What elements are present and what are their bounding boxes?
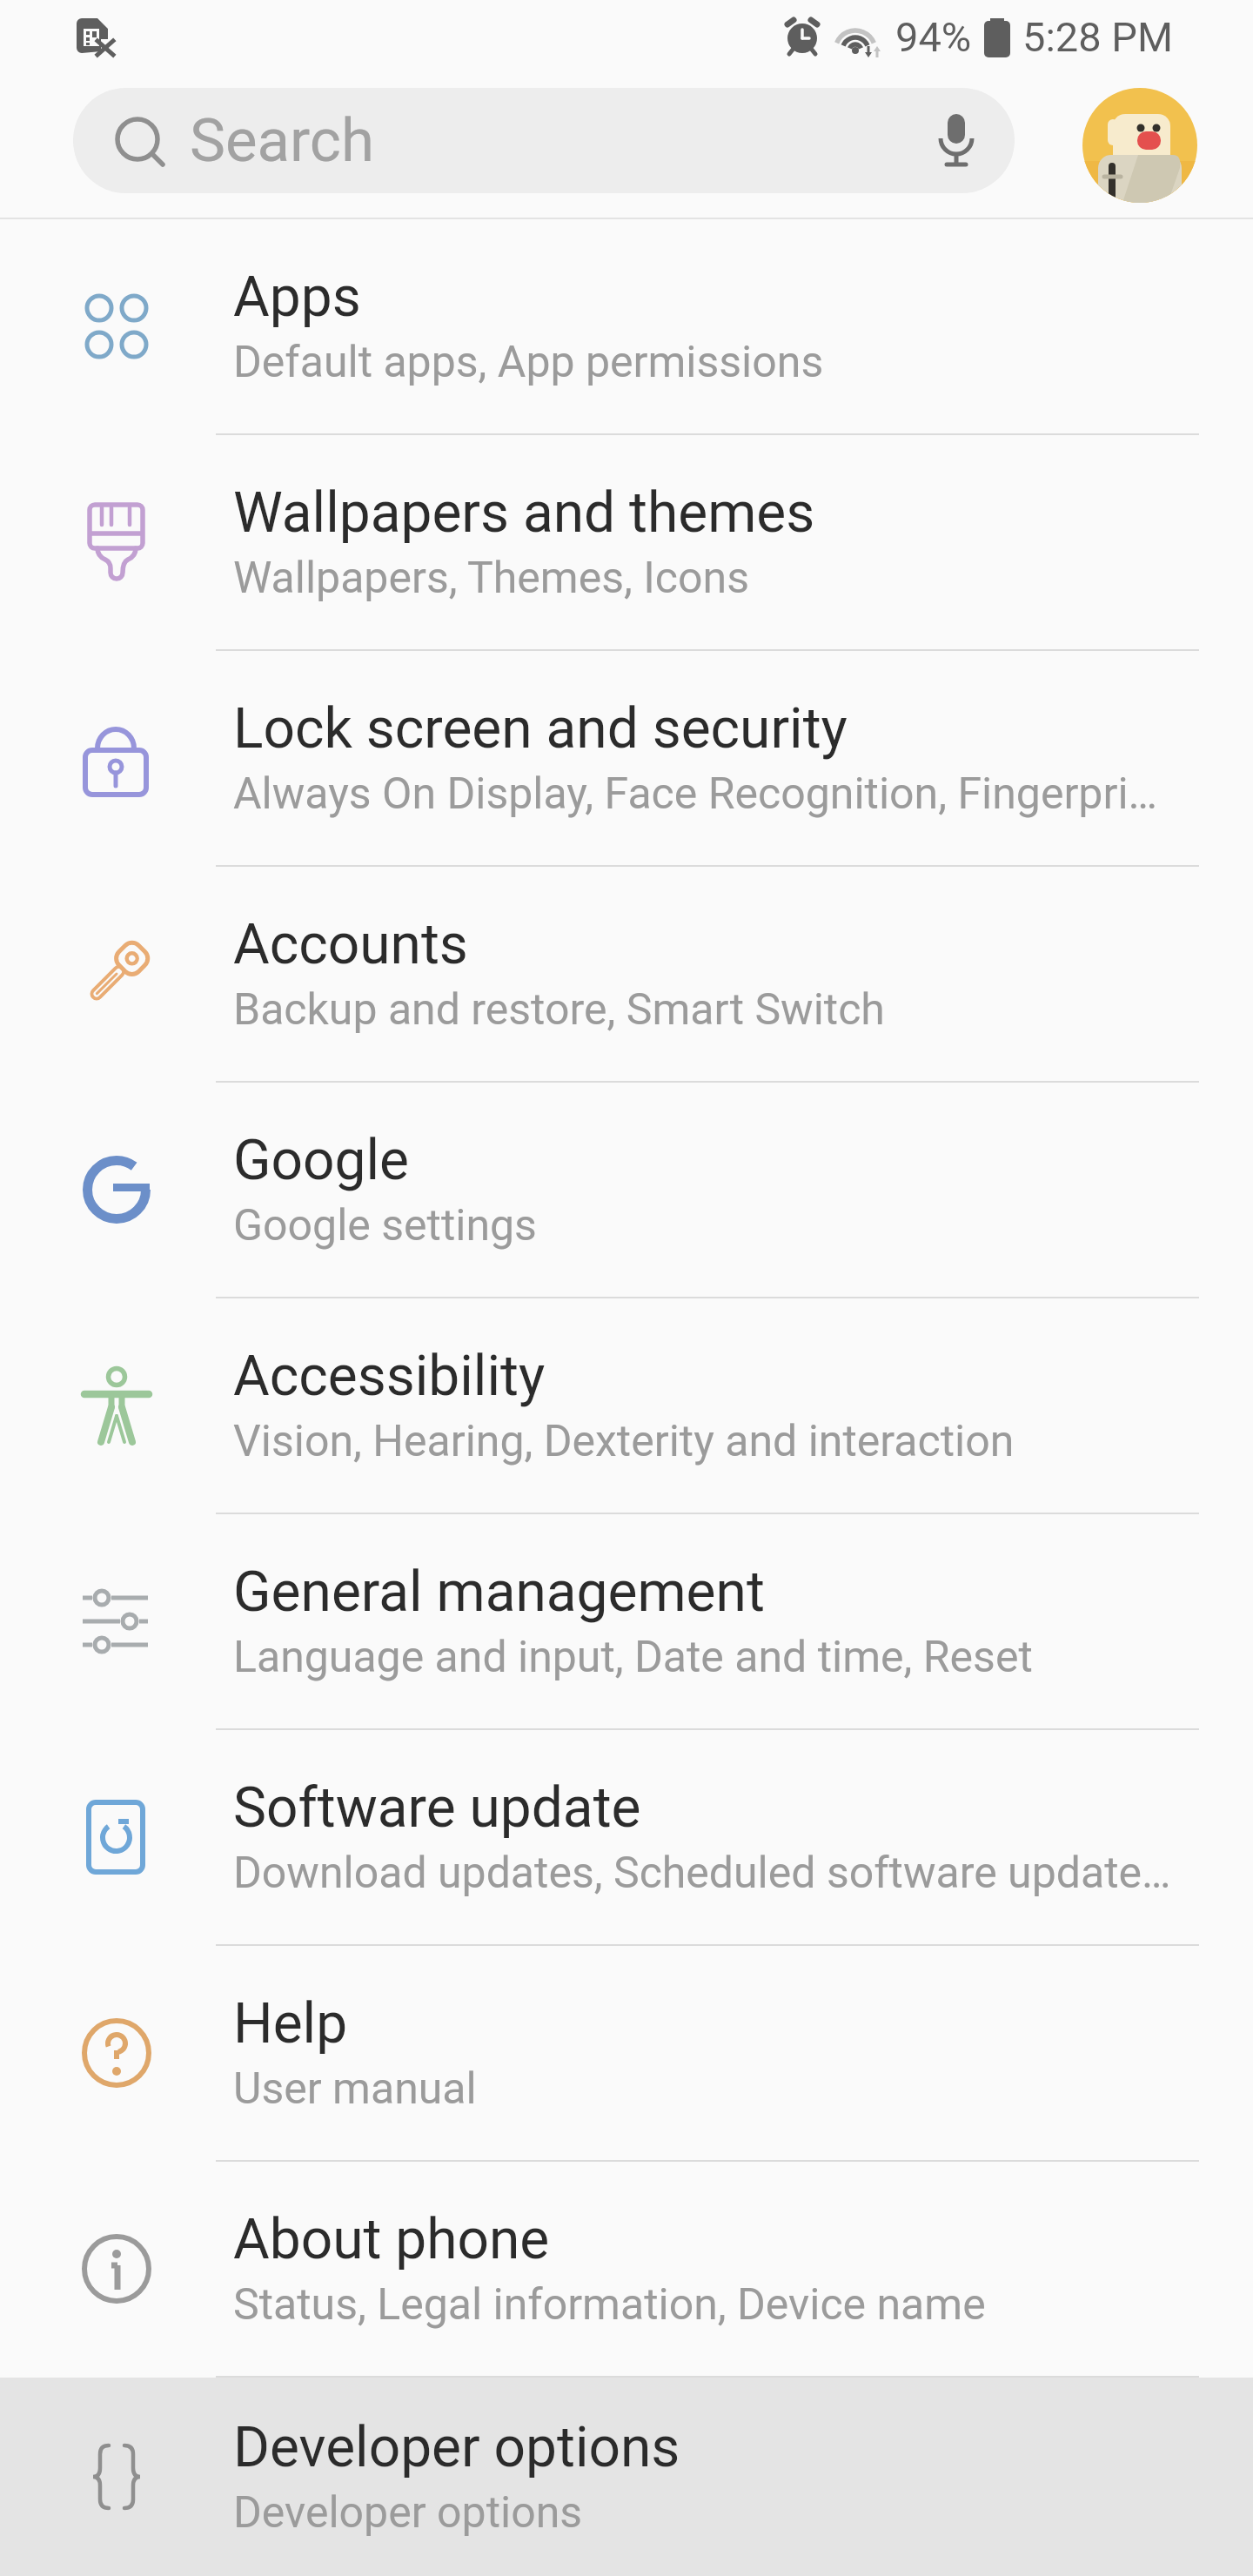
staticText: About phone	[233, 2207, 550, 2272]
staticText: General management	[233, 1560, 765, 1625]
button[interactable]: Lock screen and security	[0, 651, 1253, 865]
staticText: Wallpapers, Themes, Icons	[233, 553, 749, 604]
staticText: Accessibility	[233, 1344, 546, 1409]
button[interactable]: Wallpapers and themes	[0, 435, 1253, 649]
staticText: Developer options	[233, 2487, 583, 2539]
staticText: 5:28 PM	[1022, 13, 1173, 61]
staticText: Apps	[233, 265, 361, 330]
staticText: Lock screen and security	[233, 696, 848, 761]
staticText: Language and input, Date and time, Reset	[233, 1632, 1033, 1683]
button[interactable]: Software update	[0, 1730, 1253, 1944]
button[interactable]: Apps	[0, 219, 1253, 433]
staticText: Software update	[233, 1775, 641, 1841]
staticText: Always On Display, Face Recognition, Fin…	[233, 768, 1157, 820]
staticText: Default apps, App permissions	[233, 337, 824, 388]
staticText: 94%	[895, 13, 972, 61]
staticText: Search	[190, 105, 374, 176]
staticText: Google	[233, 1128, 410, 1193]
staticText: Status, Legal information, Device name	[233, 2279, 986, 2331]
button[interactable]: Help	[0, 1946, 1253, 2160]
staticText: Backup and restore, Smart Switch	[233, 984, 885, 1036]
staticText: Help	[233, 1991, 348, 2056]
button[interactable]: Google	[0, 1083, 1253, 1297]
button[interactable]: Accessibility	[0, 1298, 1253, 1513]
staticText: Wallpapers and themes	[233, 480, 815, 546]
button[interactable]: Accounts	[0, 867, 1253, 1081]
staticText: Developer options	[233, 2415, 680, 2480]
button[interactable]: Search	[73, 88, 1015, 193]
staticText: Download updates, Scheduled software upd…	[233, 1848, 1171, 1899]
button[interactable]: General management	[0, 1514, 1253, 1728]
staticText: Google settings	[233, 1200, 537, 1251]
staticText: Accounts	[233, 912, 468, 977]
button[interactable]	[1082, 88, 1197, 203]
staticText: Vision, Hearing, Dexterity and interacti…	[233, 1416, 1015, 1467]
staticText: User manual	[233, 2063, 477, 2115]
button[interactable]: Developer options	[0, 2378, 1253, 2576]
button[interactable]: About phone	[0, 2162, 1253, 2376]
